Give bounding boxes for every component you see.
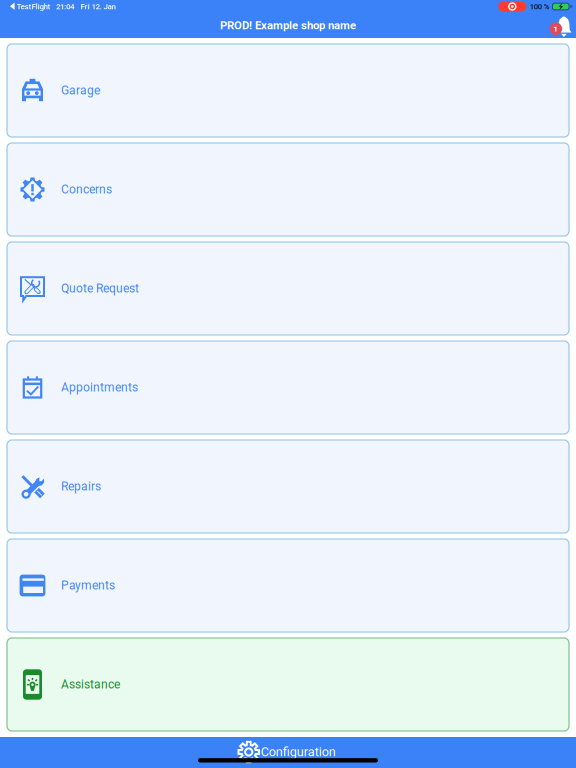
staticText: PROD! Example shop name [220, 19, 356, 32]
staticText: Quote Request [61, 281, 139, 296]
button[interactable]: Garage [7, 44, 569, 137]
staticText: 21:04 [56, 2, 74, 11]
button[interactable]: Quote Request [7, 242, 569, 335]
staticText: Garage [61, 83, 100, 98]
staticText: Appointments [61, 380, 138, 395]
staticText: TestFlight [16, 2, 50, 11]
staticText: Payments [61, 578, 115, 593]
button[interactable]: Assistance [7, 638, 569, 731]
button[interactable]: Appointments [7, 341, 569, 434]
staticText: Repairs [61, 479, 101, 494]
staticText: Assistance [61, 677, 120, 692]
staticText: 100 % [530, 2, 550, 11]
button[interactable]: Payments [7, 539, 569, 632]
staticText: Configuration [261, 745, 336, 759]
staticText: Fri 12. Jan [80, 2, 115, 11]
staticText: Concerns [61, 182, 112, 197]
button[interactable]: Notifications [549, 14, 569, 36]
staticText: 1 [553, 24, 558, 33]
button[interactable]: Repairs [7, 440, 569, 533]
button[interactable]: Configuration [232, 741, 344, 763]
button[interactable]: Concerns [7, 143, 569, 236]
